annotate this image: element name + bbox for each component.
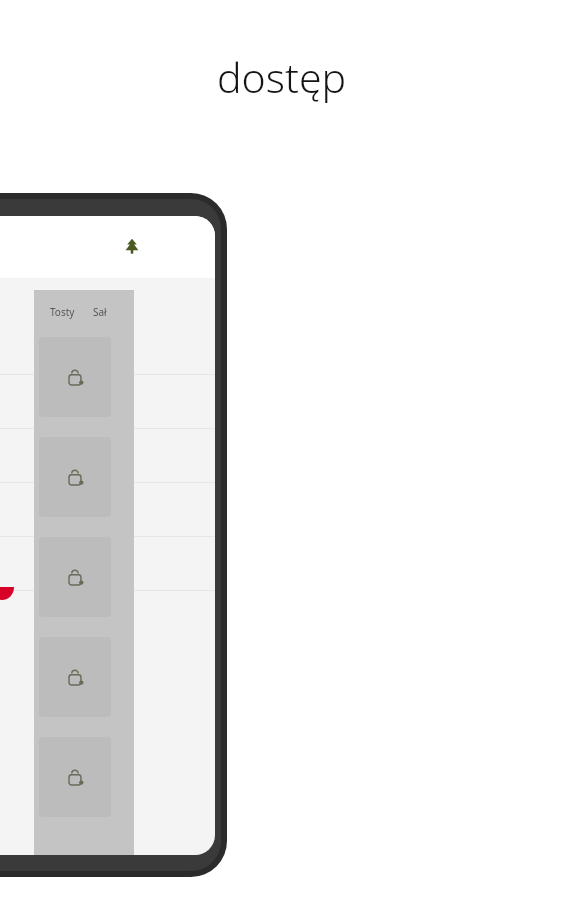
button[interactable]: Tosty — [50, 305, 75, 319]
button[interactable]: Eco — [112, 223, 152, 268]
button[interactable]: Add to bag — [39, 337, 111, 417]
button[interactable]: Add to bag — [39, 637, 111, 717]
button[interactable]: Add to bag — [39, 437, 111, 517]
button[interactable]: Add to bag — [39, 537, 111, 617]
staticText: dostęp — [217, 49, 347, 105]
staticText: Sał — [93, 305, 107, 319]
staticText: Tosty — [50, 305, 75, 319]
button[interactable]: Sał — [93, 305, 107, 319]
button[interactable]: Add to bag — [39, 737, 111, 817]
